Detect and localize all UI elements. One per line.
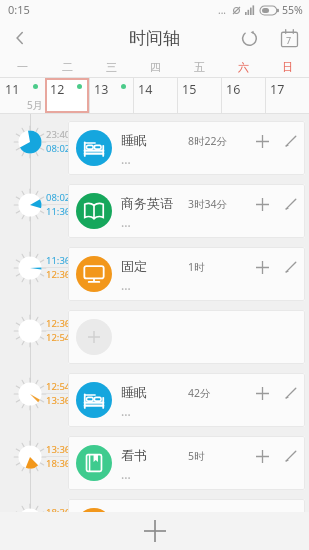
button[interactable]: Edit [277,442,305,470]
staticText: 8时22分 [188,134,228,148]
button[interactable]: Add [248,442,276,470]
button[interactable]: 看书 [68,436,305,490]
button[interactable]: 睡眠 [68,373,305,427]
staticText: ... [121,403,131,419]
staticText: 42分 [188,386,211,400]
button[interactable]: Add [248,253,276,281]
staticText: 16 [226,81,241,98]
button[interactable]: 睡眠 [68,121,305,175]
staticText: 5时 [188,449,205,463]
button[interactable]: 16 [221,78,265,113]
staticText: 11 [5,81,20,98]
staticText: 7 [286,34,292,46]
staticText: 08:02 [46,142,71,155]
staticText: 六 [238,60,249,74]
staticText: 23:40 [46,128,71,141]
button[interactable]: 12 [45,78,89,113]
button[interactable]: Add [248,127,276,155]
staticText: 13:36 [46,443,71,456]
staticText: 3时34分 [188,197,228,211]
button[interactable]: 15 [177,78,221,113]
button[interactable]: 固定 [68,499,305,550]
button[interactable]: Calendar [269,19,309,57]
staticText: 08:02 [46,191,71,204]
button[interactable]: Edit [277,190,305,218]
staticText: 18:36 [46,506,71,519]
button[interactable]: 13 [89,78,133,113]
staticText: ... [121,466,131,482]
staticText: 15 [182,81,197,98]
staticText: 睡眠 [121,384,147,400]
button[interactable]: Edit [277,505,305,533]
staticText: ... [218,3,227,17]
staticText: 14 [138,81,153,98]
staticText: 二 [62,60,73,74]
staticText: 18:36 [46,457,71,470]
staticText: ... [121,277,131,293]
staticText: 固定 [121,258,147,274]
button[interactable]: Add [248,505,276,533]
button[interactable]: Add [248,379,276,407]
staticText: 5月 [27,98,43,112]
staticText: 12 [50,81,65,98]
staticText: 11:36 [46,205,71,218]
staticText: 看书 [121,447,147,463]
staticText: 17 [270,81,285,98]
staticText: 13:36 [46,394,71,407]
button[interactable]: Refresh [229,19,269,57]
button[interactable]: Edit [277,379,305,407]
staticText: 13 [94,81,109,98]
staticText: 三 [106,60,117,74]
staticText: 四 [150,60,161,74]
staticText: 商务英语 [121,195,173,211]
staticText: 55% [282,3,303,17]
button[interactable]: Add [248,190,276,218]
button[interactable]: Add entry [0,512,309,550]
staticText: 0:15 [8,2,30,17]
staticText: 日 [282,60,293,74]
staticText: 一 [17,60,28,74]
staticText: ... [121,214,131,230]
staticText: 12:36 [46,268,71,281]
staticText: 1时 [188,260,205,274]
button[interactable]: 11 [0,78,45,113]
staticText: 睡眠 [121,132,147,148]
button[interactable]: Edit [277,127,305,155]
button[interactable]: 商务英语 [68,184,305,238]
staticText: ... [121,151,131,167]
button[interactable]: Edit [277,253,305,281]
staticText: 12:54 [46,331,71,344]
button[interactable]: Back [0,19,40,57]
staticText: 12:54 [46,380,71,393]
button[interactable]: 固定 [68,247,305,301]
button[interactable]: 14 [133,78,177,113]
staticText: 时间轴 [129,28,180,49]
button[interactable]: 17 [265,78,309,113]
button[interactable] [68,310,305,364]
staticText: 11:36 [46,254,71,267]
staticText: 12:36 [46,317,71,330]
staticText: 五 [194,60,205,74]
